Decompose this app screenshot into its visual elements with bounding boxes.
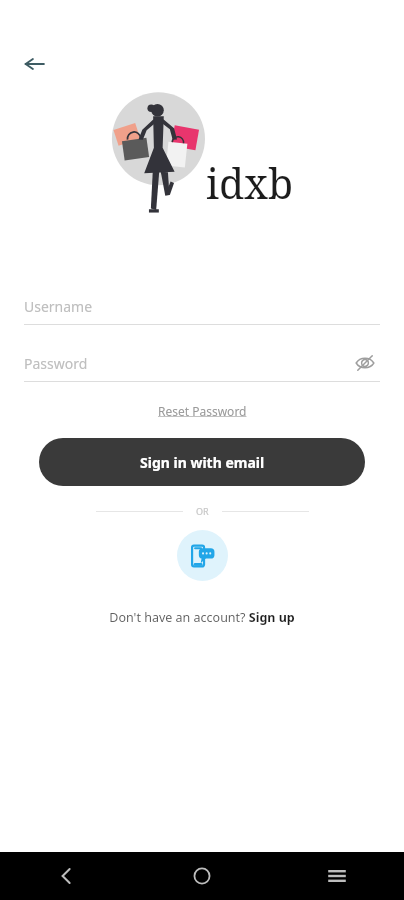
button[interactable]: Sign in with email (39, 438, 365, 486)
staticText: Reset Password (158, 403, 247, 419)
staticText: Username (24, 297, 93, 316)
staticText: Don't have an account? Sign up (109, 609, 295, 626)
button[interactable]: Username (24, 288, 380, 324)
button[interactable]: Don't have an account? Sign up (103, 605, 301, 630)
staticText: idxb (206, 155, 294, 211)
staticText: Sign in with email (140, 453, 265, 472)
staticText: OR (196, 505, 209, 517)
button[interactable]: Back (0, 852, 134, 900)
button[interactable]: Password (24, 345, 380, 381)
button[interactable]: Sign in with SMS (177, 530, 228, 581)
button[interactable]: Home (134, 852, 269, 900)
button[interactable]: Back (14, 44, 54, 84)
staticText: Password (24, 354, 88, 373)
button[interactable]: Reset Password (152, 400, 253, 422)
button[interactable]: Recent apps (269, 852, 404, 900)
button[interactable]: Show password (350, 348, 380, 378)
